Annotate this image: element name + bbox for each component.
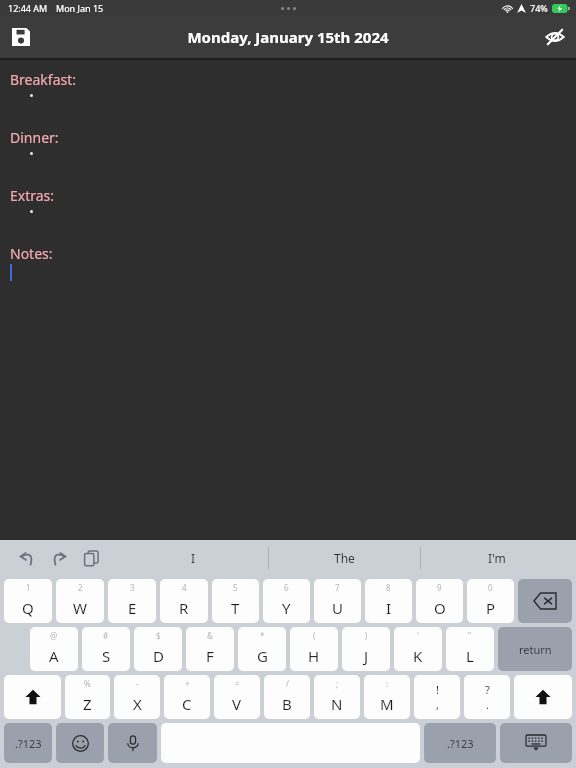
staticText: & [207,630,213,641]
button[interactable]: Redo [46,545,72,571]
button[interactable]: = [214,675,260,719]
button[interactable]: - [114,675,160,719]
button[interactable]: " [446,627,494,671]
staticText: Mon Jan 15 [56,2,104,14]
button[interactable]: .?123 [4,723,52,763]
staticText: The [334,550,355,566]
button[interactable]: ) [342,627,390,671]
button[interactable]: Shift [4,675,61,719]
button[interactable]: 4 [160,579,208,623]
staticText: return [519,642,552,657]
staticText: .?123 [447,736,474,751]
staticText: Notes: [10,244,53,263]
button[interactable]: Save [0,16,42,58]
staticText: S [102,646,111,666]
staticText: 6 [284,582,289,593]
staticText: T [231,598,240,618]
staticText: Extras: [10,186,55,205]
staticText: : [386,678,389,689]
button[interactable]: Backspace [518,579,572,623]
staticText: % [84,678,91,689]
staticText: , [436,697,439,712]
button[interactable]: 1 [4,579,52,623]
button[interactable]: @ [30,627,78,671]
button[interactable]: Emoji [56,723,104,763]
button[interactable]: Dictate [108,723,157,763]
button[interactable]: 8 [365,579,412,623]
button[interactable]: Hide keyboard [500,723,572,763]
button[interactable]: The [269,540,420,576]
staticText: 74% [530,2,548,14]
button[interactable]: ' [394,627,442,671]
staticText: ! [436,682,439,697]
staticText: N [331,694,343,714]
staticText: G [257,646,268,666]
button[interactable]: ! [414,675,460,719]
button[interactable]: 3 [108,579,156,623]
staticText: D [153,646,164,666]
staticText: Breakfast: [10,70,77,89]
staticText: 0 [488,582,493,593]
button[interactable]: 9 [416,579,463,623]
button[interactable]: Undo [14,545,40,571]
button[interactable]: I [118,540,268,576]
staticText: B [282,694,292,714]
button[interactable]: Paste [78,545,104,571]
button[interactable]: $ [134,627,182,671]
staticText: + [185,678,190,689]
staticText: J [364,646,369,666]
staticText: M [380,694,394,714]
button[interactable]: Hide [534,16,576,58]
staticText: 5 [233,582,238,593]
staticText: ' [417,630,419,641]
staticText: 2 [78,582,83,593]
staticText: Monday, January 15th 2024 [187,27,389,47]
staticText: * [260,630,265,641]
staticText: 8 [386,582,391,593]
button[interactable]: % [65,675,110,719]
staticText: X [133,694,142,714]
button[interactable]: 2 [56,579,104,623]
staticText: K [413,646,423,666]
staticText: ) [365,630,368,641]
button[interactable]: 5 [212,579,259,623]
button[interactable]: * [238,627,286,671]
staticText: O [434,598,446,618]
staticText: . [486,697,489,712]
staticText: E [128,598,137,618]
staticText: F [206,646,214,666]
staticText: Y [282,598,291,618]
staticText: Dinner: [10,128,59,147]
staticText: V [232,694,242,714]
staticText: ( [313,630,316,641]
staticText: " [468,630,472,641]
button[interactable]: ? [464,675,510,719]
staticText: I [386,598,392,618]
button[interactable]: 0 [467,579,514,623]
staticText: R [179,598,189,618]
button[interactable]: 7 [314,579,361,623]
button[interactable]: & [186,627,234,671]
staticText: 12:44 AM [8,2,48,14]
button[interactable]: ; [314,675,360,719]
staticText: 1 [26,582,31,593]
button[interactable]: : [364,675,410,719]
button[interactable]: I'm [421,540,572,576]
button[interactable]: return [498,627,572,671]
button[interactable]: .?123 [424,723,496,763]
button[interactable]: / [264,675,310,719]
staticText: 7 [335,582,340,593]
staticText: ; [336,678,339,689]
staticText: = [235,678,240,689]
button[interactable]: 6 [263,579,310,623]
staticText: # [103,630,109,641]
button[interactable]: Shift [514,675,572,719]
staticText: C [182,694,192,714]
staticText: 9 [437,582,442,593]
staticText: .?123 [15,736,42,751]
button[interactable]: ( [290,627,338,671]
staticText: - [136,678,139,689]
button[interactable]: + [164,675,210,719]
button[interactable]: # [82,627,130,671]
